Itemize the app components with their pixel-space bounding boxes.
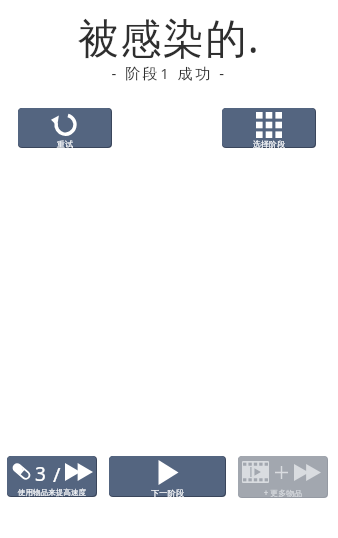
staticText: + 更多物品 (238, 487, 328, 498)
staticText: 3 (35, 461, 46, 482)
staticText: 被感染的. (0, 9, 338, 65)
button[interactable]: 重试 (18, 108, 112, 148)
staticText: 下一阶段 (109, 488, 226, 497)
staticText: 使用物品来提高速度 (7, 488, 97, 497)
button[interactable]: 更多物品 (238, 456, 328, 498)
button[interactable]: 使用物品来提高速度 (7, 456, 97, 497)
button[interactable]: 选择阶段 (222, 108, 316, 148)
button[interactable]: 下一阶段 (109, 456, 226, 497)
staticText: - 阶段1 成功 - (0, 63, 338, 83)
staticText: 选择阶段 (222, 139, 316, 148)
staticText: / (53, 461, 61, 482)
staticText: 重试 (18, 139, 112, 148)
